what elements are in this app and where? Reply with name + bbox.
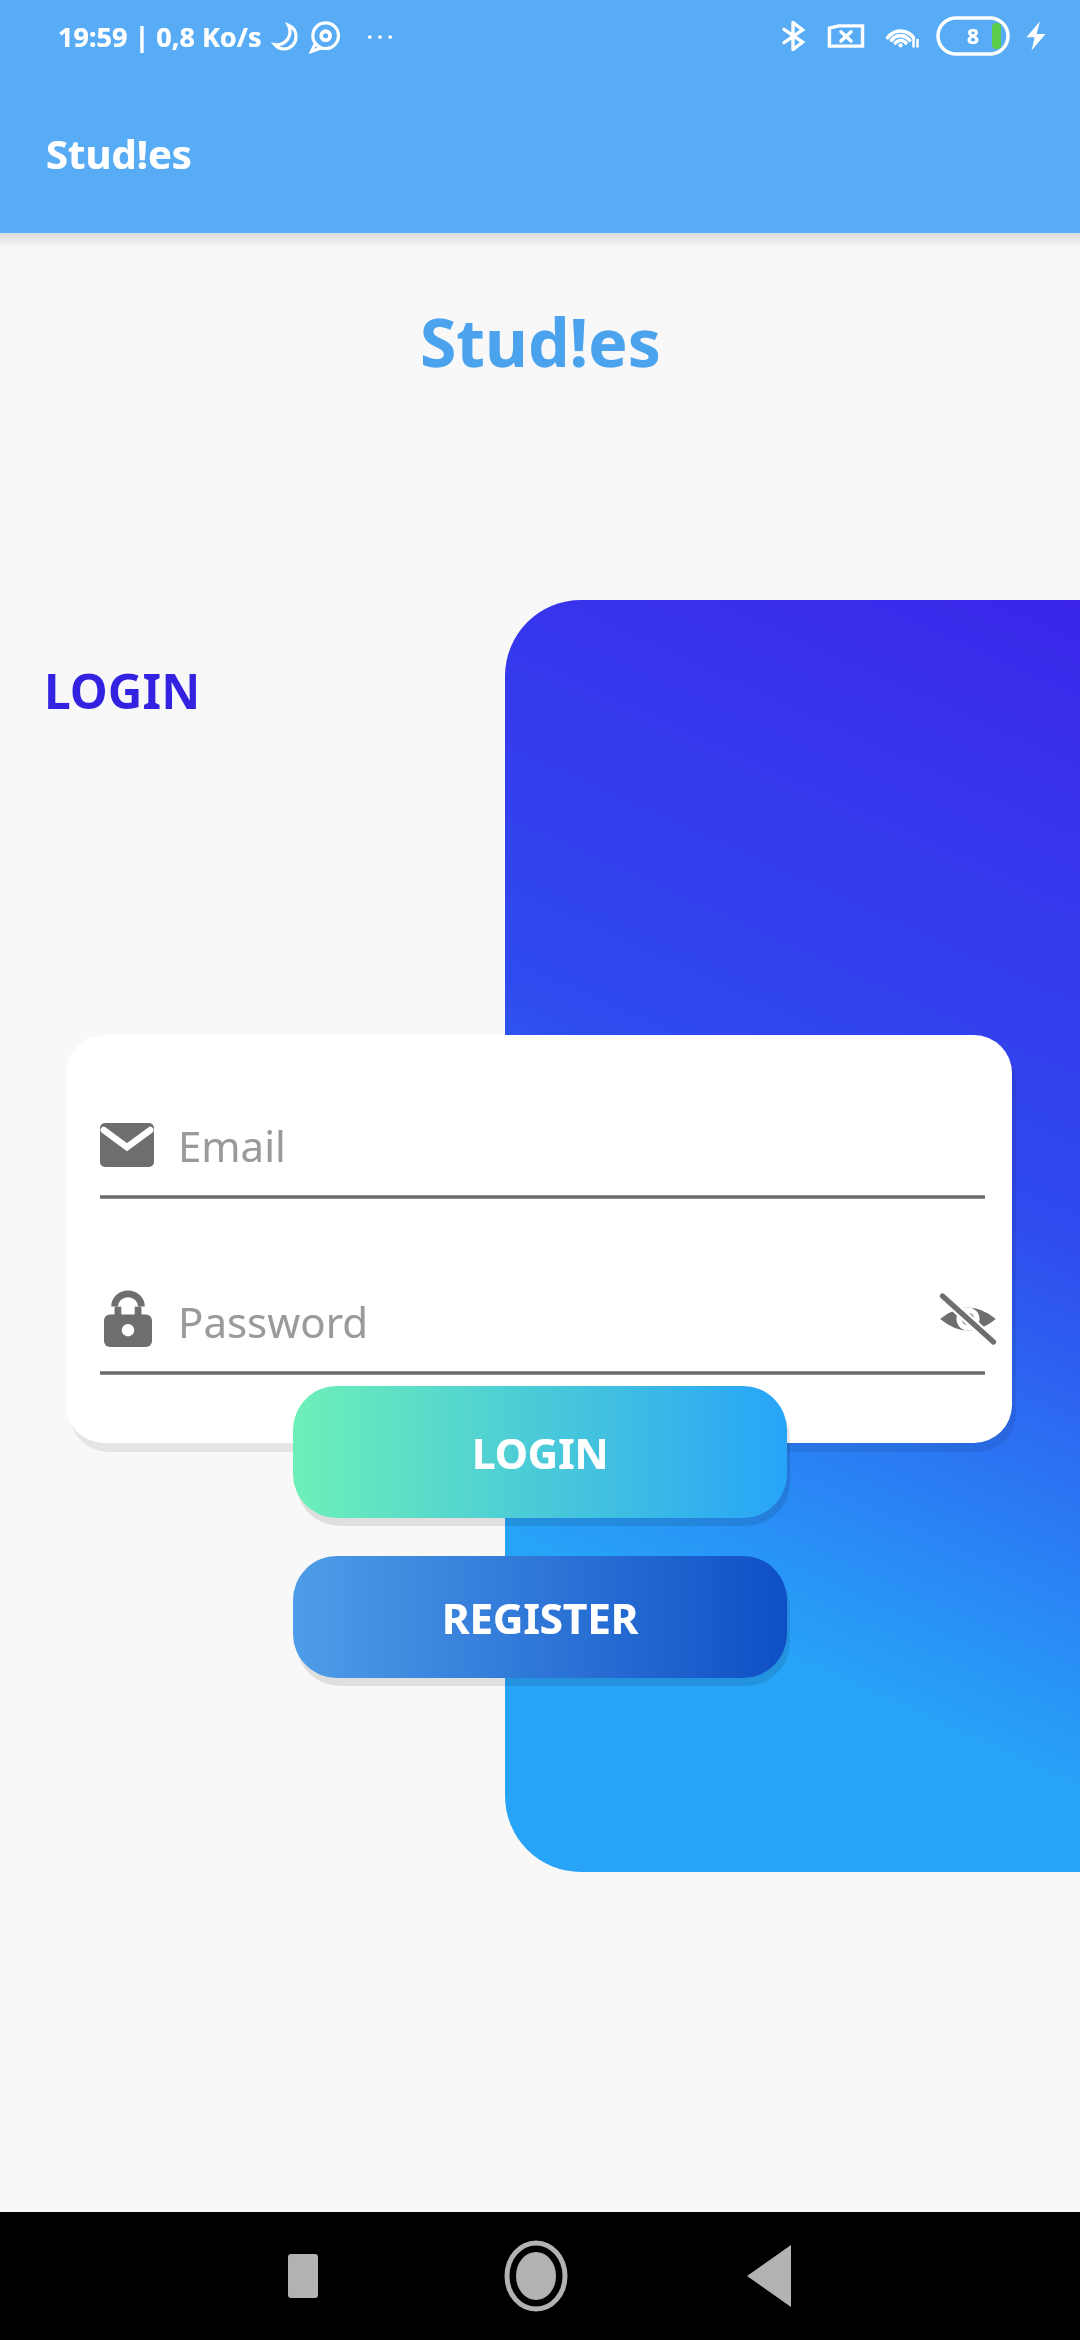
staticText: LOGIN: [44, 658, 201, 723]
staticText: 19:59 | 0,8 Ko/s: [58, 18, 262, 55]
button[interactable]: Home: [481, 2221, 591, 2331]
staticText: Stud!es: [420, 296, 661, 386]
button[interactable]: Show password: [934, 1285, 1002, 1353]
staticText: Email: [178, 1117, 286, 1174]
staticText: 8: [967, 22, 980, 51]
staticText: LOGIN: [472, 1424, 609, 1481]
button[interactable]: Email: [66, 1097, 1012, 1207]
button[interactable]: Recent apps: [255, 2228, 351, 2324]
button[interactable]: Password: [66, 1273, 1012, 1383]
staticText: REGISTER: [442, 1589, 639, 1646]
button[interactable]: REGISTER: [293, 1556, 787, 1678]
staticText: Password: [178, 1293, 368, 1350]
button[interactable]: LOGIN: [293, 1386, 787, 1518]
staticText: Stud!es: [46, 126, 192, 180]
button[interactable]: Back: [721, 2228, 817, 2324]
